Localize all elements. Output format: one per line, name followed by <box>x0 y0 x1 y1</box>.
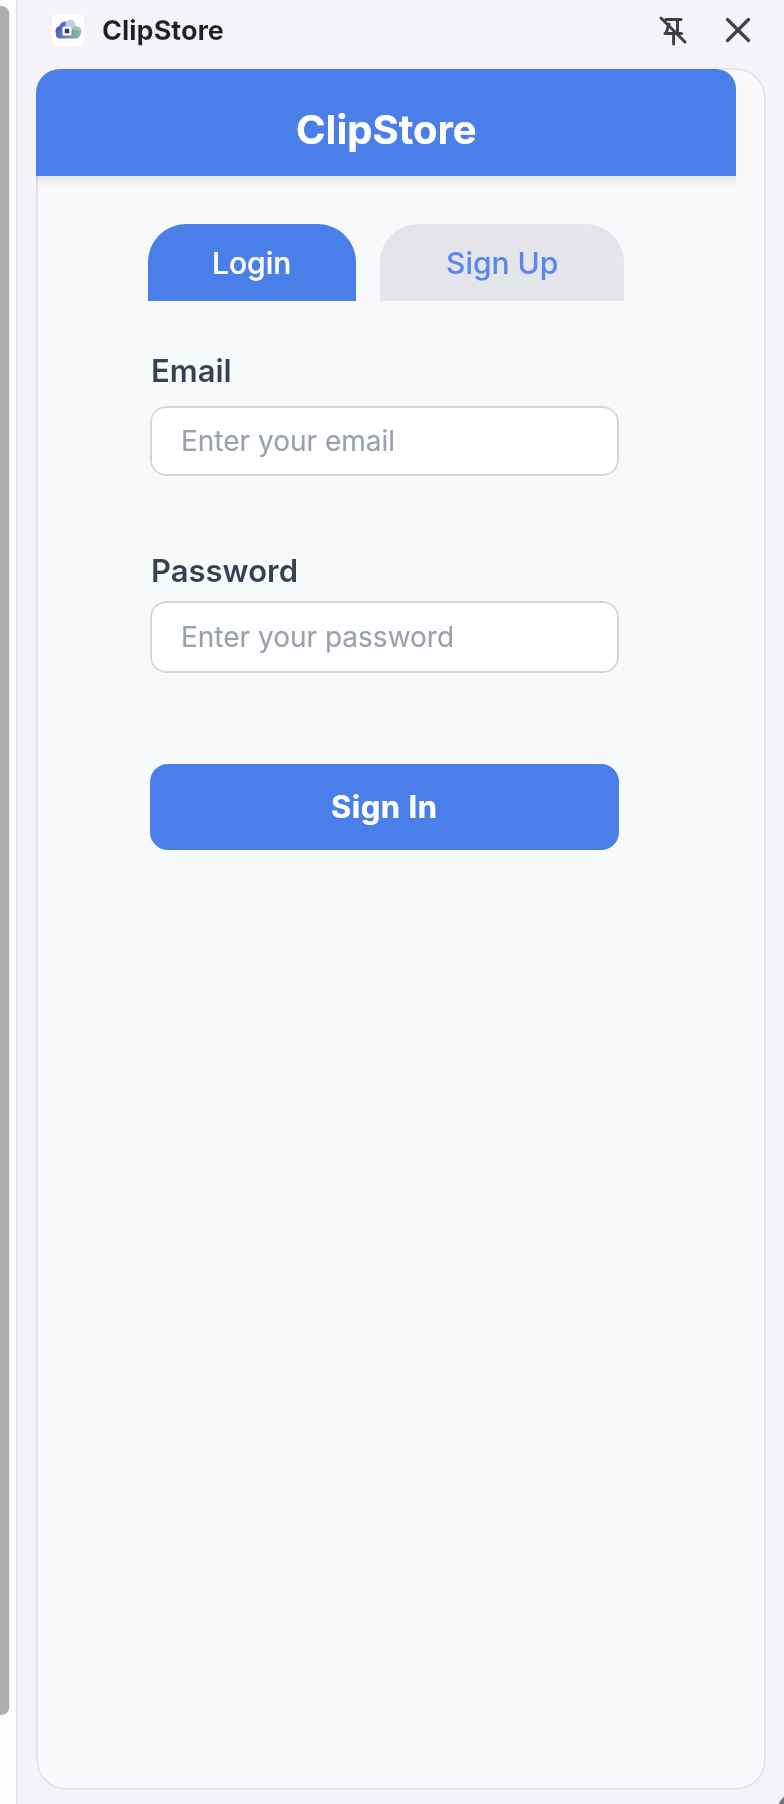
staticText: Password <box>151 552 298 590</box>
staticText: ClipStore <box>296 105 477 153</box>
button[interactable]: Enter your password <box>150 601 619 673</box>
staticText: Login <box>212 245 292 281</box>
button[interactable] <box>652 10 692 50</box>
staticText: Email <box>151 352 232 390</box>
button[interactable]: Sign In <box>150 764 619 850</box>
staticText: Enter your email <box>181 424 396 458</box>
staticText: Enter your password <box>181 620 455 654</box>
button[interactable] <box>722 13 754 45</box>
staticText: ClipStore <box>102 14 224 47</box>
button[interactable]: Sign Up <box>380 224 624 301</box>
staticText: Sign Up <box>446 245 559 281</box>
button[interactable]: Login <box>148 224 356 301</box>
staticText: Sign In <box>331 788 438 826</box>
button[interactable]: Enter your email <box>150 406 619 476</box>
